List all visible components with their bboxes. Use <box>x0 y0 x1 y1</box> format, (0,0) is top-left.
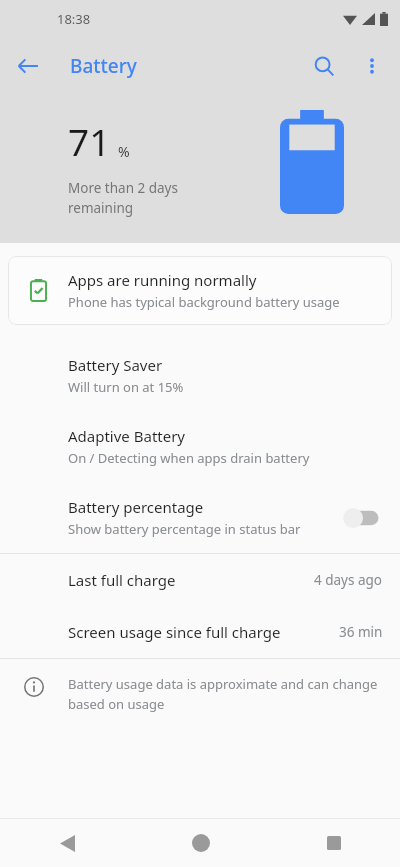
staticText: % <box>118 142 130 161</box>
staticText: 36 min <box>339 623 383 641</box>
staticText: Battery <box>70 53 137 79</box>
staticText: 4 days ago <box>314 571 383 589</box>
staticText: Show battery percentage in status bar <box>68 520 301 538</box>
staticText: Will turn on at 15% <box>68 378 184 396</box>
button[interactable]: Search <box>300 42 348 90</box>
staticText: More than 2 days <box>68 179 178 197</box>
staticText: Adaptive Battery <box>68 426 186 446</box>
button[interactable]: Apps are running normally <box>8 256 392 325</box>
staticText: Battery Saver <box>68 355 163 375</box>
button[interactable]: Recent apps <box>267 819 400 867</box>
staticText: Apps are running normally <box>68 270 257 290</box>
staticText: remaining <box>68 199 134 217</box>
staticText: 18:38 <box>57 10 91 28</box>
button[interactable]: Battery percentage <box>0 482 400 553</box>
staticText: based on usage <box>68 695 165 713</box>
staticText: Screen usage since full charge <box>68 622 339 642</box>
button[interactable]: More options <box>348 42 396 90</box>
staticText: On / Detecting when apps drain battery <box>68 449 310 467</box>
staticText: 71 <box>68 116 111 166</box>
button[interactable]: Battery Saver <box>0 340 400 411</box>
staticText: Last full charge <box>68 570 314 590</box>
staticText: Battery usage data is approximate and ca… <box>68 675 378 693</box>
button[interactable]: Back <box>0 819 134 867</box>
button[interactable]: Back <box>8 46 48 86</box>
button[interactable]: Battery percentage toggle <box>338 505 384 531</box>
button[interactable]: Screen usage since full charge <box>0 606 400 658</box>
staticText: Battery percentage <box>68 497 204 517</box>
button[interactable]: Home <box>134 819 267 867</box>
button[interactable]: Adaptive Battery <box>0 411 400 482</box>
staticText: Phone has typical background battery usa… <box>68 293 340 311</box>
button[interactable]: Last full charge <box>0 554 400 606</box>
